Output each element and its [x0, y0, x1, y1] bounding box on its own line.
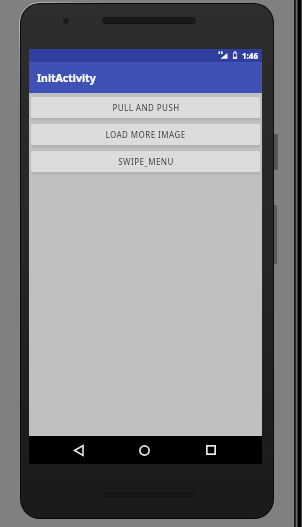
staticText: PULL AND PUSH — [112, 102, 180, 113]
staticText: 1:46 — [242, 50, 258, 61]
staticText: LOAD MORE IMAGE — [105, 129, 186, 140]
staticText: InitActivity — [37, 71, 96, 85]
button[interactable]: Recents — [197, 436, 225, 464]
button[interactable]: SWIPE_MENU — [31, 151, 260, 172]
button[interactable]: LOAD MORE IMAGE — [31, 124, 260, 145]
button[interactable]: PULL AND PUSH — [31, 97, 260, 118]
staticText: SWIPE_MENU — [118, 156, 174, 167]
button[interactable]: Home — [130, 436, 158, 464]
button[interactable]: Back — [65, 436, 93, 464]
